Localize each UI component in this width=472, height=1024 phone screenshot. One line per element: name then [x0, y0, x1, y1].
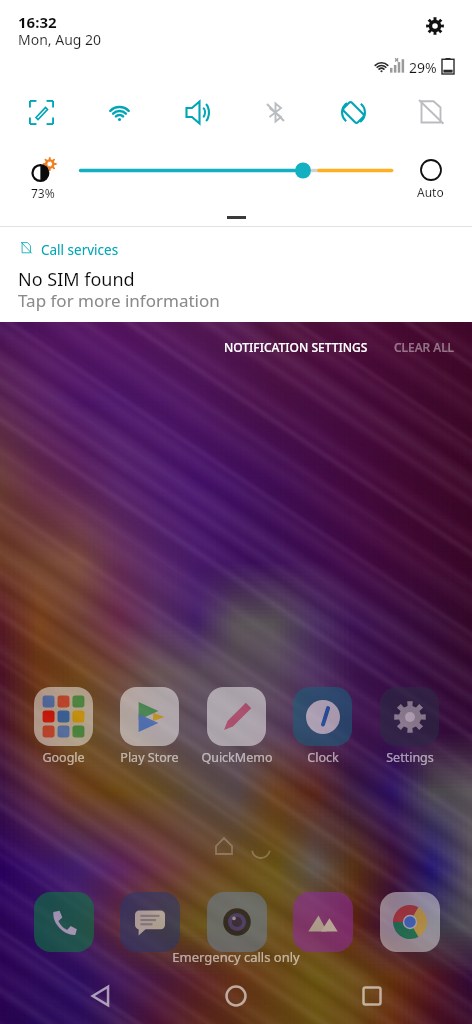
staticText: Tap for more information — [18, 289, 220, 312]
staticText: Auto — [417, 184, 444, 200]
button[interactable]: Sound — [165, 90, 229, 134]
button[interactable]: Bluetooth — [243, 90, 307, 134]
staticText: 29% — [409, 58, 437, 77]
button[interactable]: Google — [28, 687, 99, 766]
staticText: Emergency calls only — [0, 948, 472, 966]
button[interactable]: Auto brightness — [412, 159, 449, 200]
button[interactable]: Phone — [28, 892, 99, 952]
staticText: CLEAR ALL — [394, 339, 454, 355]
button[interactable]: Gallery — [287, 892, 358, 952]
button[interactable]: Capture+ — [9, 90, 73, 134]
staticText: Google — [42, 749, 85, 766]
button[interactable]: CLEAR ALL — [388, 333, 460, 361]
button[interactable]: Back — [66, 968, 136, 1024]
button[interactable]: Home — [201, 968, 271, 1024]
button[interactable]: Call services — [0, 227, 472, 322]
button[interactable]: Settings — [374, 687, 445, 766]
staticText: Clock — [307, 749, 339, 766]
button[interactable]: Brightness — [22, 159, 63, 201]
staticText: Call services — [41, 241, 119, 259]
staticText: 16:32 — [18, 12, 57, 32]
button[interactable]: Settings — [419, 10, 451, 42]
staticText: Play Store — [120, 749, 179, 766]
button[interactable]: Do not disturb — [399, 90, 463, 134]
button[interactable]: NOTIFICATION SETTINGS — [218, 333, 374, 361]
button[interactable]: Play Store — [114, 687, 185, 766]
button[interactable]: Recents — [337, 968, 407, 1024]
button[interactable]: QuickMemo+ — [201, 687, 272, 766]
button[interactable]: Chrome — [374, 892, 445, 952]
staticText: QuickMemo+ — [201, 749, 272, 766]
button[interactable]: Messages — [114, 892, 185, 952]
button[interactable]: Camera — [201, 892, 272, 952]
staticText: NOTIFICATION SETTINGS — [224, 339, 368, 355]
staticText: Settings — [386, 749, 434, 766]
staticText: 73% — [31, 185, 55, 201]
button[interactable]: Clock — [287, 687, 358, 766]
staticText: No SIM found — [18, 267, 135, 292]
button[interactable]: Auto-rotate — [321, 90, 385, 134]
staticText: Mon, Aug 20 — [18, 30, 102, 49]
button[interactable]: Brightness slider — [72, 156, 400, 186]
button[interactable]: Wi-Fi — [87, 90, 151, 134]
